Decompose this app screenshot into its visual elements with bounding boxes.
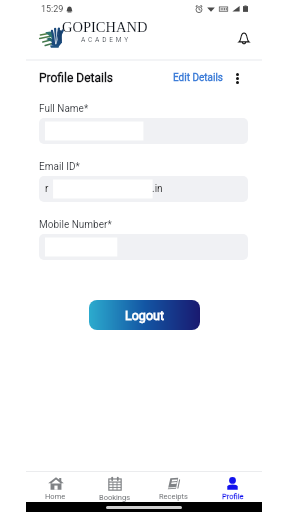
staticText: Email ID* [39,161,80,173]
button[interactable]: r [39,176,248,202]
button[interactable] [39,118,248,144]
staticText: A C A D E M Y [81,36,129,44]
staticText: Profile [222,492,244,501]
staticText: 15:29 [41,4,64,15]
button[interactable]: Bookings [85,472,144,502]
button[interactable]: Logout [89,300,200,330]
button[interactable]: More options [229,70,245,86]
staticText: r [45,183,49,195]
staticText: Full Name* [39,103,89,115]
button[interactable]: Receipts [144,472,203,502]
button[interactable] [39,234,248,260]
staticText: Home [45,492,66,501]
staticText: Bookings [99,493,131,502]
button[interactable]: Home [26,472,85,502]
button[interactable]: Notifications [234,28,254,48]
staticText: Receipts [159,492,188,501]
staticText: Edit Details [173,72,224,84]
staticText: Logout [125,308,164,323]
staticText: .in [152,183,163,195]
button[interactable]: Edit Details [170,68,227,88]
staticText: Mobile Number* [39,219,112,231]
staticText: GOPICHAND [62,19,148,35]
staticText: Profile Details [39,71,113,85]
button[interactable]: Profile [203,472,262,502]
